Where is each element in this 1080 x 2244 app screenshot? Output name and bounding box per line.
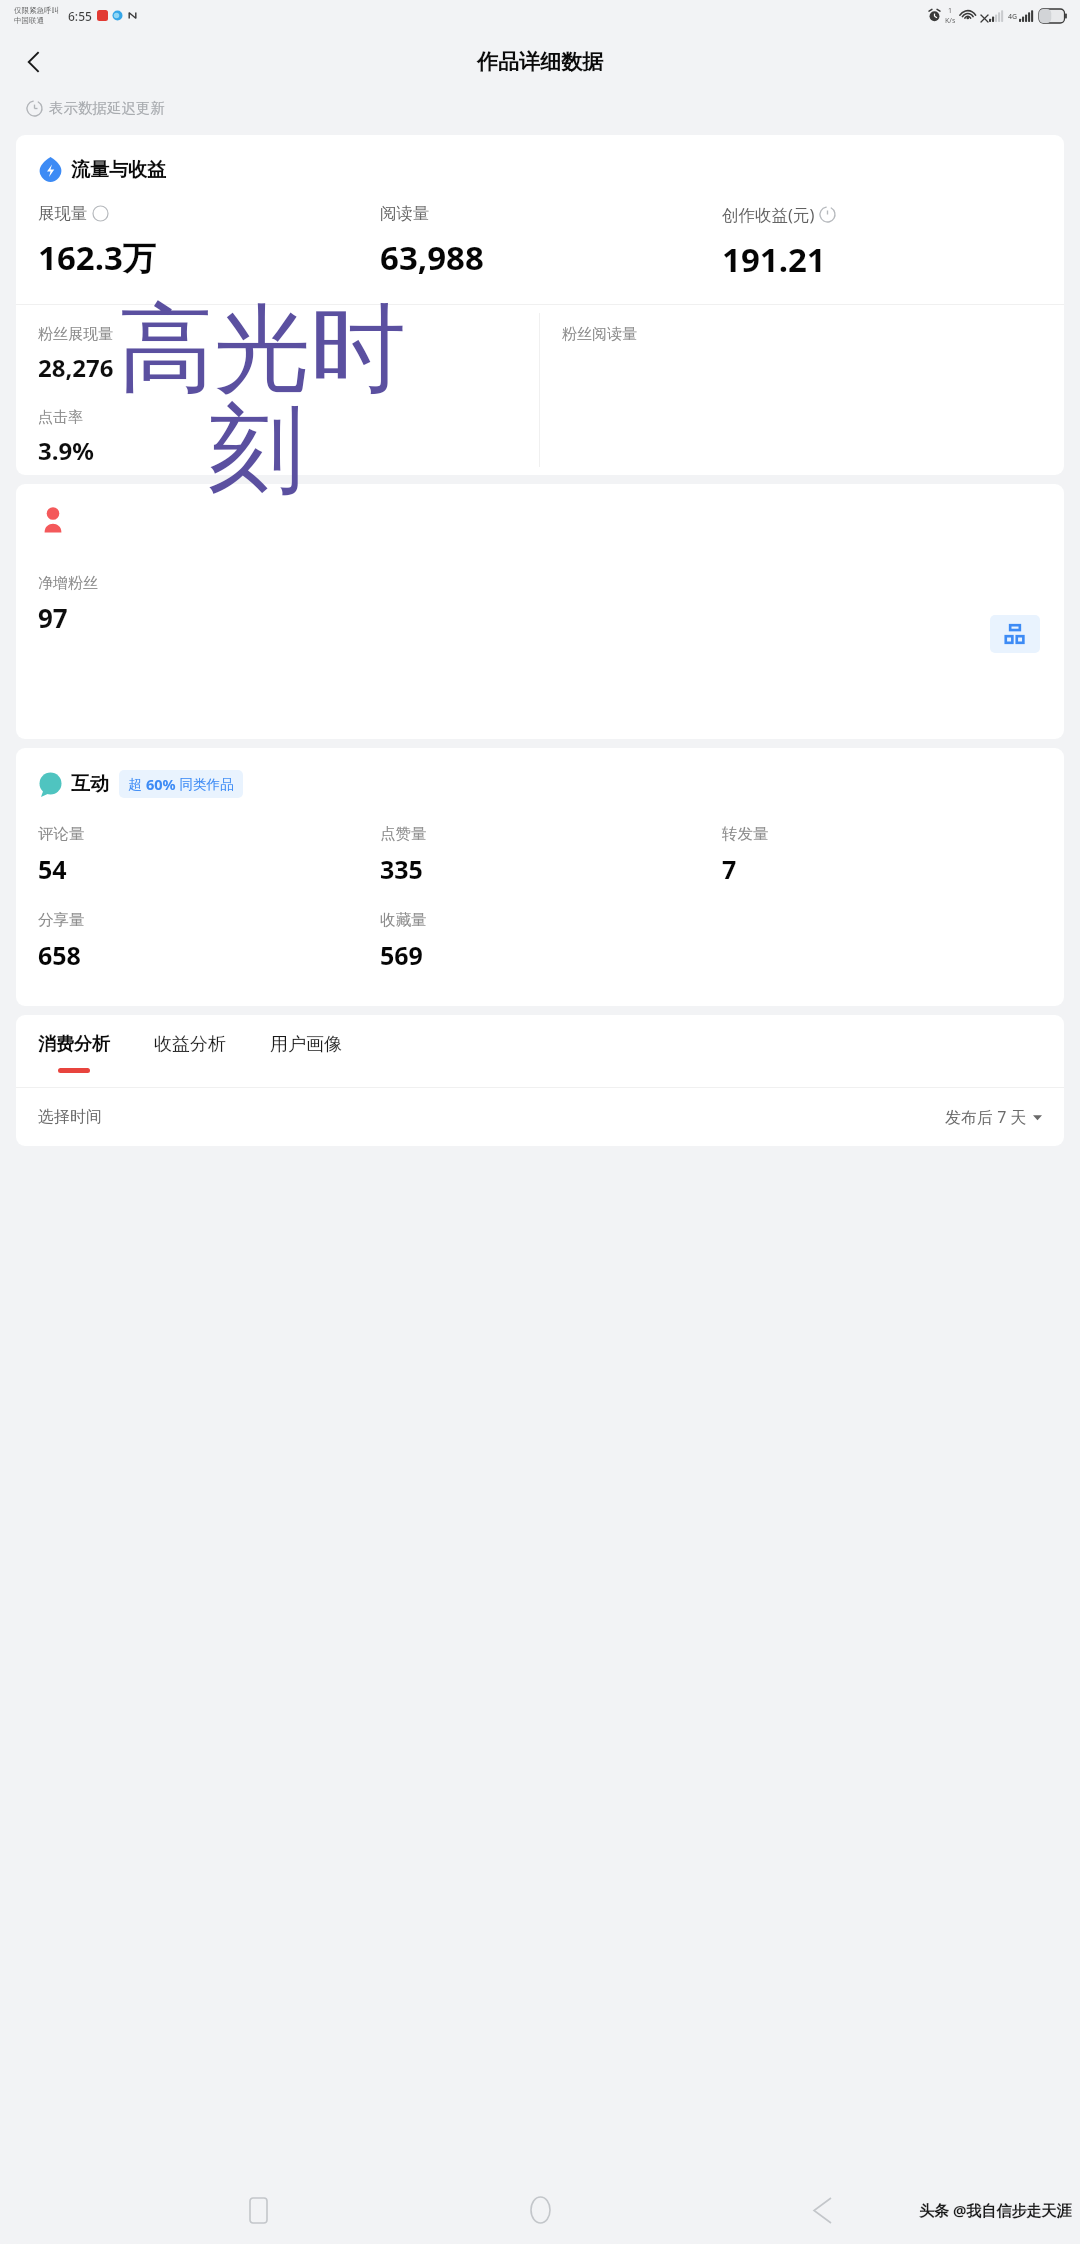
staticText: 高光时 <box>118 290 406 411</box>
staticText: 净增粉丝 <box>38 574 98 593</box>
staticText: 191.21 <box>722 237 826 282</box>
staticText: 569 <box>380 938 423 972</box>
staticText: 658 <box>38 938 81 972</box>
staticText: 28,276 <box>38 351 114 384</box>
button[interactable]: 发布后 7 天 <box>945 1106 1042 1128</box>
button[interactable]: 超 <box>128 774 234 794</box>
staticText: 4G <box>1008 12 1018 22</box>
button[interactable]: 用户画像 <box>270 1033 342 1068</box>
staticText: 作品详细数据 <box>477 49 603 75</box>
staticText: 同类作品 <box>176 775 234 793</box>
staticText: K/s <box>945 16 956 26</box>
staticText: 阅读量 <box>380 203 430 224</box>
staticText: 63,988 <box>380 235 484 280</box>
staticText: 仅限紧急呼叫 <box>14 6 59 15</box>
staticText: 收藏量 <box>380 910 427 930</box>
button[interactable]: 返回 <box>10 38 58 86</box>
staticText: 互动 <box>71 772 109 796</box>
staticText: 6:55 <box>68 8 92 24</box>
staticText: 选择时间 <box>38 1107 102 1127</box>
staticText: 展现量 <box>38 203 88 224</box>
staticText: 3.9% <box>38 434 94 467</box>
button[interactable]: 消费分析 <box>38 1033 110 1073</box>
staticText: 发布后 7 天 <box>945 1106 1027 1128</box>
staticText: 中国联通 <box>14 16 44 25</box>
staticText: 335 <box>380 852 423 886</box>
button[interactable]: 收益分析 <box>154 1033 226 1068</box>
staticText: 超 <box>128 775 146 793</box>
staticText: 7 <box>722 852 737 886</box>
staticText: 粉丝展现量 <box>38 325 113 344</box>
button[interactable]: 主页 <box>516 2186 564 2234</box>
staticText: 流量与收益 <box>71 158 166 182</box>
staticText: 粉丝阅读量 <box>562 325 637 344</box>
staticText: 刻 <box>208 390 304 511</box>
button[interactable]: 作品分析 <box>990 615 1040 653</box>
staticText: 点赞量 <box>380 824 427 844</box>
staticText: 1 <box>948 6 953 16</box>
staticText: 头条 @我自信步走天涯 <box>919 2200 1072 2220</box>
staticText: 收益分析 <box>154 1033 226 1056</box>
staticText: 评论量 <box>38 824 85 844</box>
button[interactable]: 最近任务 <box>234 2186 282 2234</box>
staticText: 转发量 <box>722 824 769 844</box>
staticText: 创作收益(元) <box>722 203 815 226</box>
staticText: 用户画像 <box>270 1033 342 1056</box>
staticText: 162.3万 <box>38 235 156 280</box>
staticText: 表示数据延迟更新 <box>49 99 165 117</box>
staticText: 54 <box>38 852 67 886</box>
staticText: 消费分析 <box>38 1033 110 1056</box>
button[interactable]: 返回 <box>798 2186 846 2234</box>
staticText: 分享量 <box>38 910 85 930</box>
staticText: 点击率 <box>38 408 83 427</box>
staticText: 60% <box>146 774 176 794</box>
staticText: 97 <box>38 600 68 635</box>
